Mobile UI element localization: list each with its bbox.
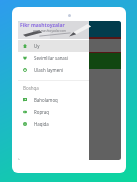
staticText: Ulash laymeni [34,67,64,73]
button[interactable]: Sevimlilar sanasi [18,52,89,64]
button[interactable]: Haqida [18,118,89,130]
staticText: www.mashtoyzalar.com [33,29,67,33]
staticText: Ropraq [34,109,49,115]
staticText: Uy [34,43,40,49]
button[interactable] [18,21,121,160]
button[interactable]: Baholamoq [18,94,89,106]
staticText: Boshqa [23,85,39,91]
staticText: Fikr mashtoyzalar [20,22,65,29]
staticText: Sevimlilar sanasi [34,55,69,61]
staticText: Haqida [34,121,49,127]
button[interactable]: Ropraq [18,106,89,118]
staticText: Baholamoq [34,97,58,103]
button[interactable]: Ulash laymeni [18,64,89,76]
button[interactable]: Uy [18,40,89,52]
